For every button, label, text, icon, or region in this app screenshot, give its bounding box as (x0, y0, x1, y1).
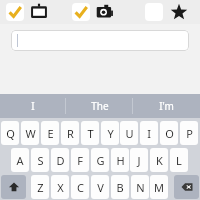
staticText: R (67, 126, 74, 141)
staticText: I'm (159, 99, 174, 113)
button[interactable]: K (150, 148, 168, 172)
button[interactable]: J (130, 148, 148, 172)
button[interactable]: H (111, 148, 129, 172)
button[interactable]: F (71, 148, 89, 172)
staticText: S (37, 153, 44, 168)
staticText: V (97, 180, 104, 195)
button[interactable]: C (71, 175, 89, 199)
other: Backspace (181, 181, 193, 193)
button[interactable]: L (170, 148, 188, 172)
staticText: X (57, 180, 64, 195)
button[interactable]: Z (31, 175, 49, 199)
staticText: P (186, 126, 193, 141)
staticText: L (176, 153, 182, 168)
staticText: M (154, 180, 164, 195)
button[interactable]: A (11, 148, 29, 172)
staticText: G (96, 153, 105, 168)
other: Shift (8, 181, 20, 193)
staticText: C (77, 180, 84, 195)
button[interactable]: V (91, 175, 109, 199)
button[interactable]: Television (30, 3, 48, 21)
staticText: D (56, 153, 65, 168)
button[interactable]: N (131, 175, 149, 199)
button[interactable]: R (61, 121, 79, 145)
button[interactable]: Backspace (174, 175, 199, 199)
button[interactable]: Y (101, 121, 119, 145)
button[interactable]: P (180, 121, 198, 145)
button[interactable]: I (140, 121, 158, 145)
staticText: The (91, 99, 109, 113)
button[interactable]: Checked option 1 (6, 3, 24, 21)
button[interactable]: B (111, 175, 129, 199)
staticText: Q (6, 126, 15, 141)
staticText: J (137, 153, 141, 168)
staticText: E (47, 126, 54, 141)
staticText: I (147, 126, 151, 141)
staticText: A (16, 153, 24, 168)
button[interactable]: M (150, 175, 168, 199)
staticText: U (125, 126, 134, 141)
staticText: N (136, 180, 145, 195)
button[interactable]: Camera (96, 3, 114, 21)
button[interactable]: G (91, 148, 109, 172)
staticText: Z (37, 180, 44, 195)
button[interactable]: Checked option 2 (72, 3, 90, 21)
staticText: O (165, 126, 174, 141)
staticText: F (77, 153, 83, 168)
button[interactable]: The (66, 94, 133, 118)
button[interactable]: D (51, 148, 69, 172)
button[interactable]: I (0, 94, 66, 118)
staticText: H (116, 153, 125, 168)
button[interactable] (11, 30, 189, 51)
staticText: B (116, 180, 124, 195)
button[interactable]: Shift (1, 175, 26, 199)
staticText: Y (107, 126, 114, 141)
staticText: T (87, 126, 94, 141)
button[interactable]: S (31, 148, 49, 172)
button[interactable]: X (51, 175, 69, 199)
button[interactable]: O (160, 121, 178, 145)
button[interactable]: U (120, 121, 138, 145)
staticText: W (25, 126, 36, 141)
button[interactable]: I'm (133, 94, 200, 118)
staticText: K (156, 153, 163, 168)
button[interactable]: Q (1, 121, 19, 145)
button[interactable]: Favorite (170, 3, 188, 21)
button[interactable]: W (21, 121, 39, 145)
button[interactable]: T (81, 121, 99, 145)
staticText: I (31, 99, 35, 113)
button[interactable]: E (41, 121, 59, 145)
